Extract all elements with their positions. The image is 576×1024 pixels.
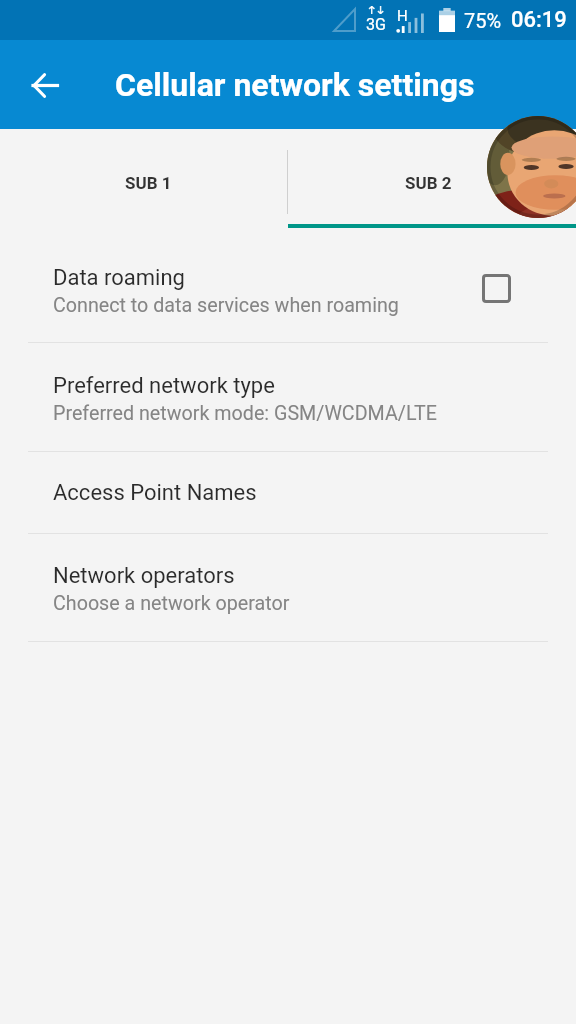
staticText: 75% <box>464 9 502 32</box>
staticText: 06:19 <box>511 7 567 33</box>
button[interactable]: Data roaming toggle <box>482 274 511 303</box>
staticText: Choose a network operator <box>53 592 290 615</box>
button[interactable]: SUB 2 <box>288 129 576 224</box>
staticText: Network operators <box>53 563 235 589</box>
staticText: Cellular network settings <box>115 66 475 104</box>
button[interactable]: Profile photo <box>487 116 576 218</box>
staticText: Access Point Names <box>53 480 257 506</box>
button[interactable]: Navigate up <box>19 59 71 111</box>
button[interactable]: Access Point Names <box>0 452 576 533</box>
staticText: Data roaming <box>53 265 185 291</box>
button[interactable]: SUB 1 <box>0 129 288 224</box>
staticText: Connect to data services when roaming <box>53 294 399 317</box>
staticText: SUB 1 <box>125 173 172 193</box>
staticText: SUB 2 <box>405 173 452 193</box>
staticText: H <box>397 7 408 25</box>
staticText: Preferred network mode: GSM/WCDMA/LTE <box>53 402 437 425</box>
staticText: 3G <box>366 15 386 34</box>
staticText: Preferred network type <box>53 373 275 399</box>
button[interactable]: Preferred network type <box>0 343 576 451</box>
button[interactable]: Network operators <box>0 534 576 641</box>
button[interactable]: Data roaming <box>0 229 576 342</box>
